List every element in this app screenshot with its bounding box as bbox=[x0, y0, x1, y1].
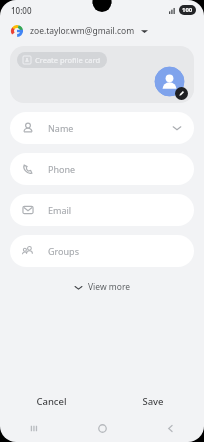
staticText: Phone bbox=[48, 163, 76, 175]
button[interactable]: Create profile card bbox=[17, 52, 107, 68]
button[interactable]: Recents bbox=[0, 415, 68, 442]
button[interactable]: Email bbox=[10, 194, 194, 226]
button[interactable]: Name bbox=[10, 112, 194, 144]
staticText: View more bbox=[88, 281, 131, 293]
button[interactable]: View more bbox=[64, 277, 141, 297]
staticText: Name bbox=[48, 122, 74, 134]
button[interactable]: Edit profile photo bbox=[155, 67, 188, 100]
staticText: Cancel bbox=[36, 395, 67, 408]
staticText: Email bbox=[48, 204, 72, 216]
staticText: Save bbox=[142, 395, 164, 408]
button[interactable]: zoe.taylor.wm@gmail.com bbox=[0, 20, 204, 42]
staticText: Create profile card bbox=[35, 55, 101, 65]
button[interactable]: Cancel bbox=[0, 387, 102, 415]
staticText: 100 bbox=[182, 6, 193, 14]
staticText: 10:00 bbox=[11, 5, 32, 16]
button[interactable]: Groups bbox=[10, 235, 194, 267]
staticText: Groups bbox=[48, 245, 79, 257]
button[interactable]: Save bbox=[102, 387, 204, 415]
button[interactable]: Back bbox=[136, 415, 204, 442]
staticText: zoe.taylor.wm@gmail.com bbox=[30, 25, 135, 37]
button[interactable]: Phone bbox=[10, 153, 194, 185]
button[interactable]: Home bbox=[68, 415, 136, 442]
